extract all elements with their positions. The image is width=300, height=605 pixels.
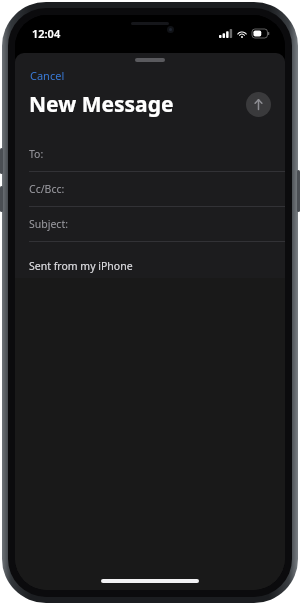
staticText: Cancel (30, 68, 65, 83)
staticText: 12:04 (32, 26, 61, 41)
button[interactable]: To: (15, 137, 285, 172)
button[interactable]: Cancel (29, 66, 66, 85)
staticText: New Message (29, 90, 174, 119)
button[interactable]: Subject: (15, 207, 285, 242)
staticText: Cc/Bcc: (29, 182, 65, 196)
button[interactable]: Send (246, 92, 271, 117)
staticText: To: (29, 147, 44, 161)
staticText: Sent from my iPhone (29, 259, 133, 273)
button[interactable]: Cc/Bcc: (15, 172, 285, 207)
staticText: Subject: (29, 217, 68, 231)
